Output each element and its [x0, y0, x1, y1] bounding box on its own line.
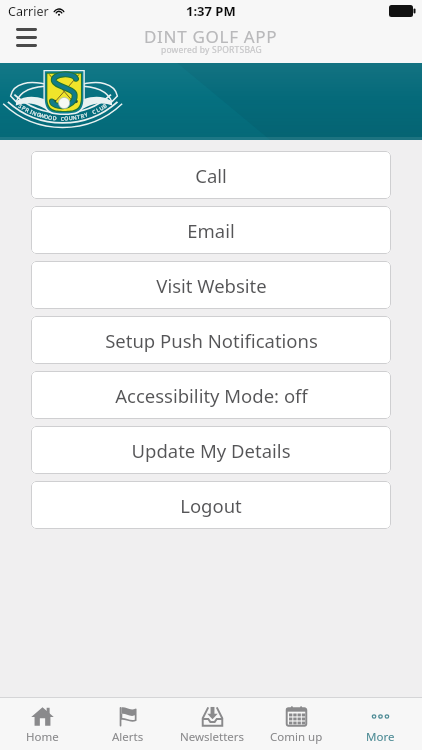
staticText: Alerts — [112, 729, 144, 745]
staticText: 1:37 PM — [186, 2, 236, 20]
staticText: Accessibility Mode: off — [115, 383, 308, 408]
staticText: Update My Details — [131, 438, 291, 463]
button[interactable]: Update My Details — [31, 426, 391, 474]
staticText: Logout — [180, 493, 242, 518]
staticText: Newsletters — [180, 729, 245, 745]
staticText: Setup Push Notifications — [105, 328, 318, 353]
button[interactable]: More — [338, 703, 422, 745]
button[interactable]: Alerts — [85, 703, 170, 745]
button[interactable]: Home — [0, 703, 85, 745]
button[interactable]: Email — [31, 206, 391, 254]
button[interactable]: Comin up — [254, 703, 338, 745]
staticText: Home — [26, 729, 59, 745]
staticText: Call — [195, 163, 227, 188]
button[interactable]: Logout — [31, 481, 391, 529]
staticText: DINT GOLF APP — [144, 25, 278, 48]
staticText: powered by SPORTSBAG — [161, 44, 262, 56]
button[interactable]: Accessibility Mode: off — [31, 371, 391, 419]
button[interactable]: Menu — [8, 22, 44, 58]
staticText: Visit Website — [156, 273, 267, 298]
button[interactable]: Call — [31, 151, 391, 199]
staticText: More — [366, 729, 395, 745]
staticText: Email — [187, 218, 235, 243]
staticText: Comin up — [270, 729, 323, 745]
staticText: Carrier — [8, 3, 49, 20]
button[interactable]: Newsletters — [170, 703, 254, 745]
button[interactable]: Setup Push Notifications — [31, 316, 391, 364]
button[interactable]: Visit Website — [31, 261, 391, 309]
